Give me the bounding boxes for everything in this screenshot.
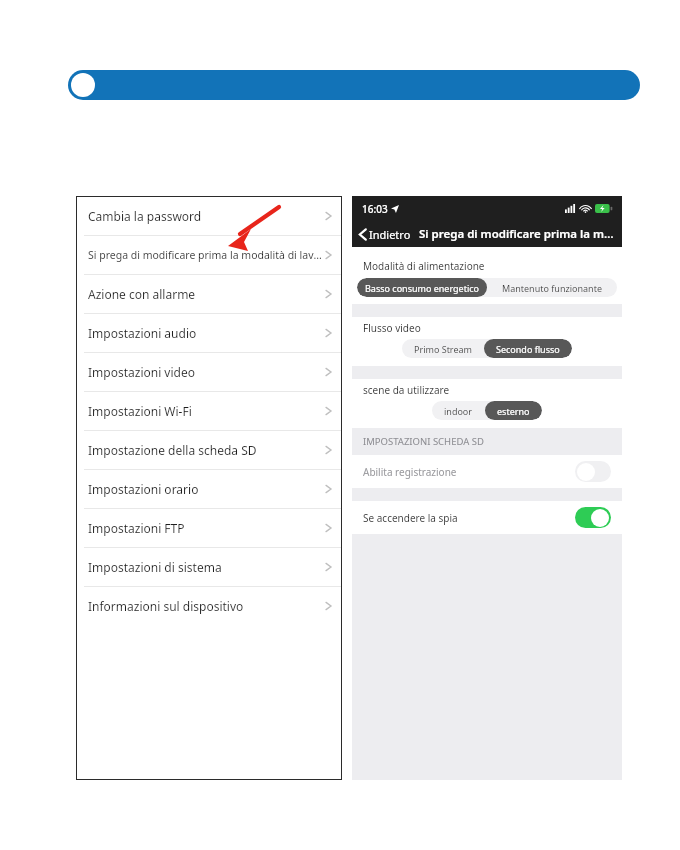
button[interactable]: Abilita registrazione <box>575 461 611 482</box>
button[interactable]: Informazioni sul dispositivo <box>76 586 342 625</box>
staticText: Modalità di alimentazione <box>363 259 485 273</box>
staticText: scene da utilizzare <box>363 383 450 397</box>
staticText: 16:03 <box>362 202 388 216</box>
button[interactable]: Impostazioni audio <box>76 313 342 352</box>
button[interactable]: Impostazioni orario <box>76 469 342 508</box>
staticText: Impostazioni Wi-Fi <box>88 403 325 419</box>
staticText: Primo Stream <box>414 343 472 355</box>
button[interactable]: Se accendere la spia <box>575 507 611 528</box>
staticText: Impostazioni orario <box>88 481 325 497</box>
staticText: Secondo flusso <box>496 343 560 355</box>
staticText: Cambia la password <box>88 208 325 224</box>
button[interactable]: Secondo flusso <box>484 339 572 358</box>
button[interactable] <box>68 70 640 100</box>
button[interactable]: Impostazioni di sistema <box>76 547 342 586</box>
staticText: Basso consumo energetico <box>365 282 479 294</box>
staticText: indoor <box>444 405 473 417</box>
staticText: Abilita registrazione <box>363 465 575 479</box>
button[interactable]: Primo Stream <box>402 339 484 358</box>
button[interactable]: Si prega di modificare prima la modalità… <box>76 235 342 274</box>
staticText: Azione con allarme <box>88 286 325 302</box>
button[interactable]: Abilita registrazione <box>352 455 622 488</box>
button[interactable]: Mantenuto funzionante <box>487 278 617 297</box>
staticText: esterno <box>497 405 530 417</box>
staticText: Se accendere la spia <box>363 511 575 525</box>
button[interactable]: Impostazione della scheda SD <box>76 430 342 469</box>
button[interactable]: Se accendere la spia <box>352 501 622 534</box>
button[interactable]: esterno <box>485 401 542 420</box>
staticText: Informazioni sul dispositivo <box>88 598 325 614</box>
button[interactable]: Impostazioni Wi-Fi <box>76 391 342 430</box>
button[interactable]: Cambia la password <box>76 196 342 235</box>
button[interactable]: Impostazioni FTP <box>76 508 342 547</box>
staticText: Flusso video <box>363 321 421 335</box>
button[interactable]: Azione con allarme <box>76 274 342 313</box>
staticText: Indietro <box>369 227 411 242</box>
button[interactable]: Basso consumo energetico <box>357 278 487 297</box>
button[interactable]: Indietro <box>357 227 413 242</box>
staticText: Impostazioni audio <box>88 325 325 341</box>
staticText: Impostazione della scheda SD <box>88 442 325 458</box>
staticText: IMPOSTAZIONI SCHEDA SD <box>363 435 484 448</box>
button[interactable]: Impostazioni video <box>76 352 342 391</box>
staticText: Impostazioni di sistema <box>88 559 325 575</box>
staticText: Impostazioni video <box>88 364 325 380</box>
button[interactable]: indoor <box>432 401 485 420</box>
staticText: Impostazioni FTP <box>88 520 325 536</box>
staticText: Si prega di modificare prima la modalità… <box>88 248 325 262</box>
staticText: Mantenuto funzionante <box>502 282 602 294</box>
staticText: Si prega di modificare prima la moda... <box>419 226 616 242</box>
